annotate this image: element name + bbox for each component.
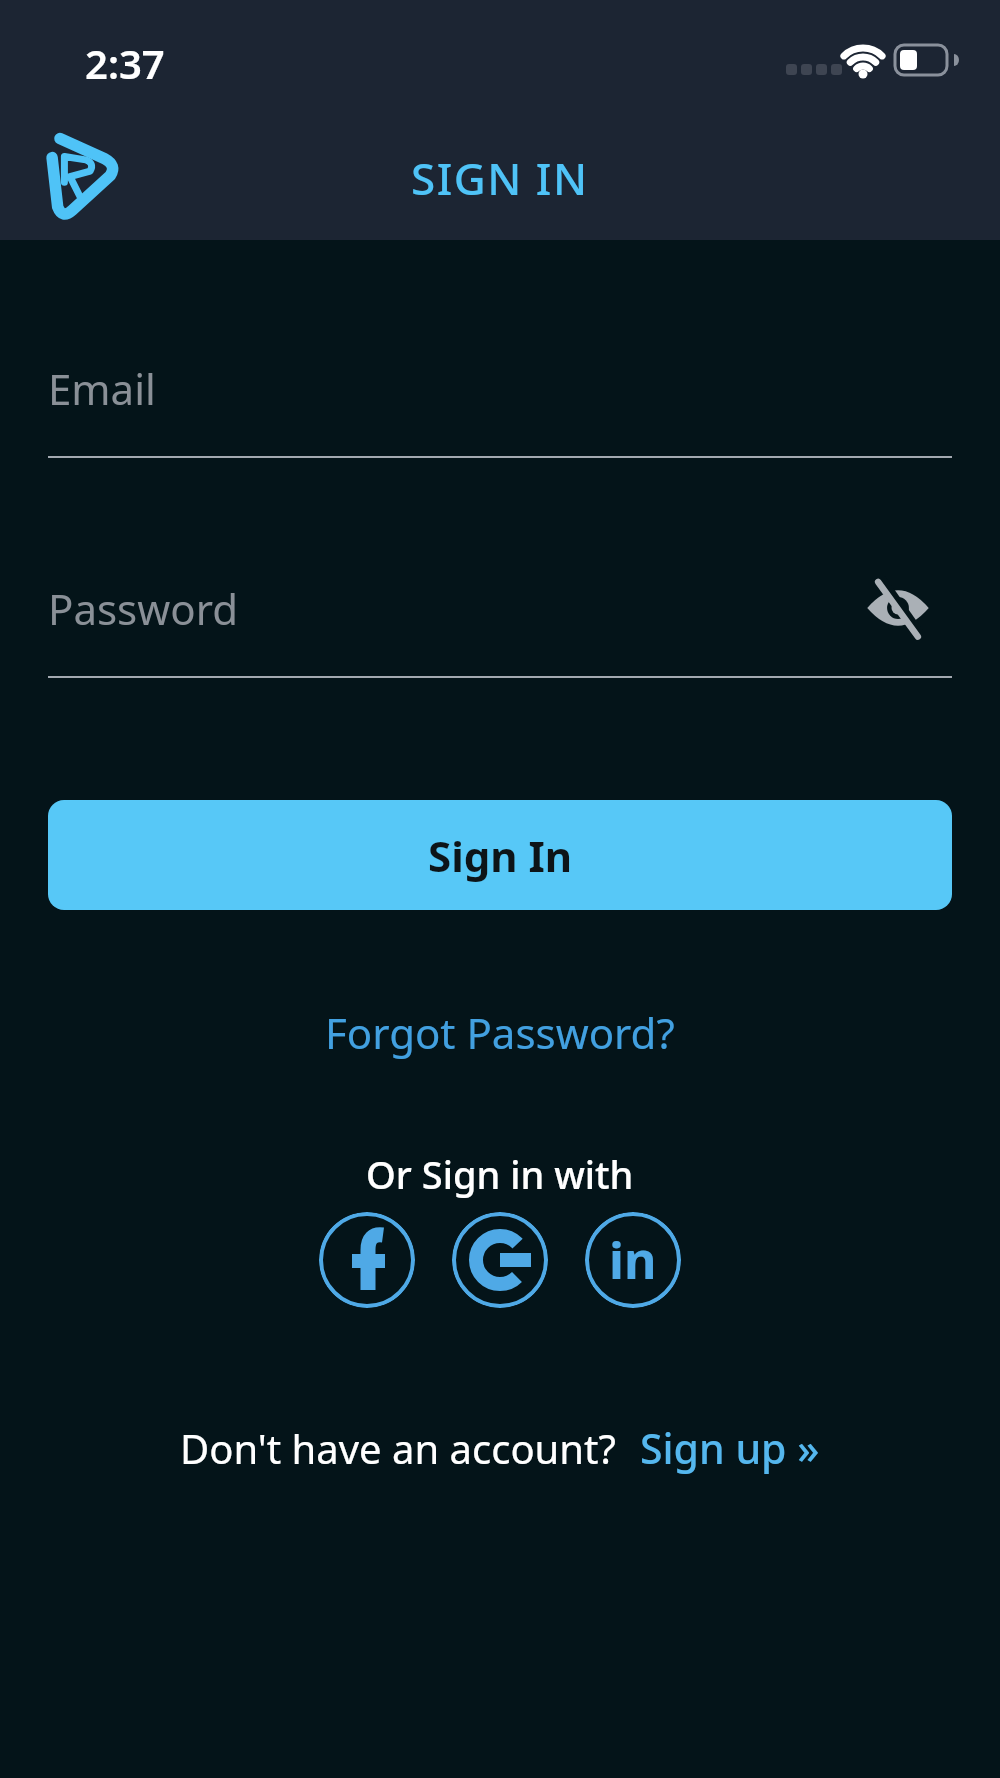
staticText: Don't have an account? — [180, 1421, 616, 1475]
staticText: Or Sign in with — [366, 1148, 634, 1200]
staticText: Email — [48, 360, 156, 417]
button[interactable] — [452, 1212, 548, 1308]
staticText: SIGN IN — [411, 148, 589, 208]
button[interactable] — [319, 1212, 415, 1308]
staticText: in — [609, 1226, 657, 1294]
staticText: Password — [48, 580, 238, 637]
staticText: Sign In — [428, 827, 573, 884]
staticText: 2:37 — [85, 36, 165, 90]
button[interactable]: Sign up » — [640, 1420, 820, 1476]
button[interactable]: Forgot Password? — [325, 1004, 675, 1061]
button[interactable]: Password — [0, 580, 1000, 637]
button[interactable]: Email — [0, 360, 1000, 417]
button[interactable]: Sign In — [48, 800, 952, 910]
button[interactable]: in — [585, 1212, 681, 1308]
